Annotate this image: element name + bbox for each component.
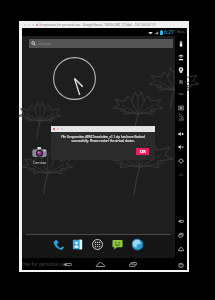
button[interactable]: Screenshot — [175, 102, 187, 113]
staticText: Camera — [33, 160, 47, 165]
button[interactable]: Camera — [27, 147, 52, 165]
staticText: Google — [38, 41, 51, 46]
button[interactable]: Power — [175, 259, 187, 270]
staticText: Genymotion for personal use - Google Nex… — [39, 23, 157, 27]
button[interactable]: Google — [29, 39, 173, 48]
button[interactable]: Home — [95, 258, 105, 270]
button[interactable]: People — [72, 239, 83, 250]
button[interactable]: Network — [175, 113, 187, 124]
button[interactable]: Home — [175, 243, 187, 254]
button[interactable]: Keyboard — [175, 88, 187, 99]
button[interactable]: Recents — [175, 229, 187, 240]
button[interactable]: Battery — [175, 38, 187, 49]
button[interactable]: GPS — [175, 52, 187, 63]
button[interactable]: Volume up — [175, 128, 187, 139]
button[interactable]: Apps — [92, 239, 103, 250]
button[interactable]: Recents — [128, 258, 138, 270]
button[interactable]: OK — [136, 148, 149, 155]
button[interactable]: Back — [175, 215, 187, 226]
button[interactable]: Phone — [53, 239, 64, 250]
button[interactable]: Camera — [175, 64, 187, 75]
staticText: Nexus 7 — [177, 30, 187, 34]
button[interactable]: Rotate — [175, 155, 187, 166]
button[interactable]: Disk IO — [175, 76, 187, 87]
staticText: 6:27 — [164, 29, 174, 36]
staticText: free for personal use — [22, 261, 67, 267]
button[interactable]: Volume down — [175, 141, 187, 152]
button[interactable]: More — [175, 169, 187, 180]
button[interactable]: Messaging — [112, 239, 123, 250]
staticText: OK — [140, 149, 146, 154]
button[interactable]: Back — [62, 258, 72, 270]
button[interactable]: Browser — [132, 239, 143, 250]
staticText: File Genymotion-ARM-Translation_v1.1.zip… — [56, 135, 150, 143]
